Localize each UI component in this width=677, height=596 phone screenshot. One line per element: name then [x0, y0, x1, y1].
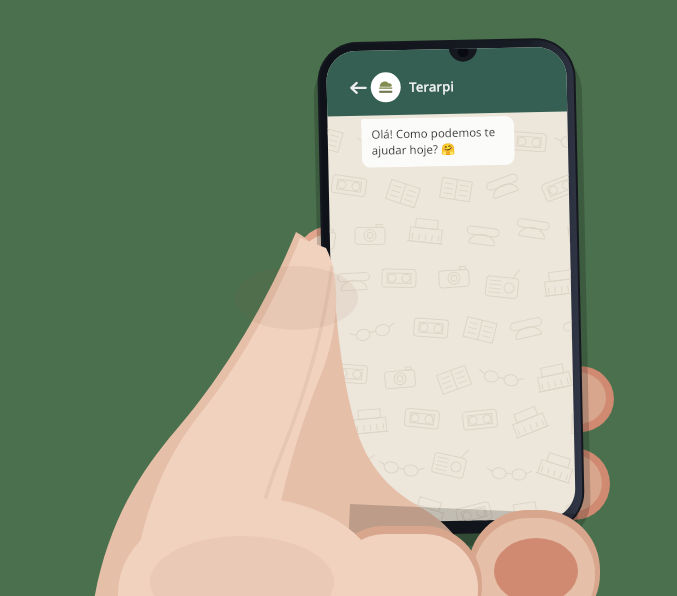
staticText: Olá! Como podemos te ajudar hoje? 🤗	[371, 124, 507, 159]
button[interactable]: Back	[350, 72, 378, 100]
button[interactable]: Olá! Como podemos te ajudar hoje? 🤗	[361, 116, 515, 168]
button[interactable]: Terarpi	[409, 77, 455, 96]
staticText: Terarpi	[409, 77, 455, 96]
button[interactable]: Terarpi profile photo	[375, 71, 406, 102]
